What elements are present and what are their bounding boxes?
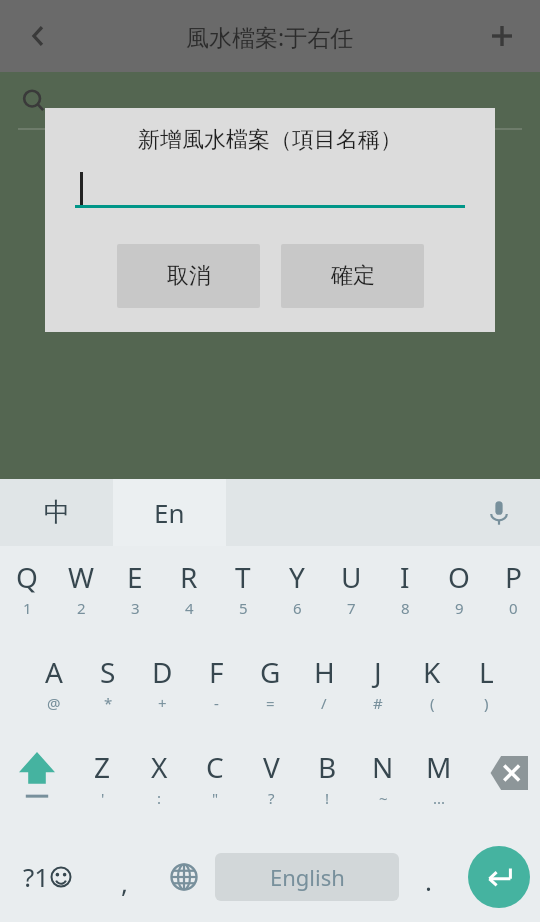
button[interactable]: I	[378, 546, 432, 641]
staticText: 8	[401, 598, 410, 618]
staticText: B	[318, 748, 337, 786]
button[interactable]: H	[297, 641, 351, 736]
staticText: -	[214, 693, 219, 713]
button[interactable]: M	[411, 736, 467, 831]
button[interactable]: F	[189, 641, 243, 736]
button[interactable]: Change language	[153, 831, 215, 922]
staticText: =	[266, 693, 275, 713]
staticText: *	[104, 693, 113, 713]
staticText: 7	[347, 598, 356, 618]
button[interactable]: R	[162, 546, 216, 641]
staticText: (	[430, 693, 435, 713]
staticText: ?	[268, 788, 275, 808]
button[interactable]: ,	[95, 831, 153, 922]
button[interactable]: Backspace	[467, 736, 540, 831]
staticText: A	[45, 653, 63, 691]
staticText: R	[180, 558, 198, 596]
staticText: U	[341, 558, 362, 596]
staticText: "	[212, 788, 219, 808]
staticText: !	[325, 788, 330, 808]
button[interactable]: D	[135, 641, 189, 736]
button[interactable]: Q	[0, 546, 54, 641]
button[interactable]: Z	[74, 736, 131, 831]
staticText: J	[374, 653, 382, 691]
button[interactable]: U	[324, 546, 378, 641]
staticText: G	[260, 653, 281, 691]
button[interactable]: Enter	[468, 846, 530, 908]
button[interactable]: Back	[14, 12, 62, 60]
button[interactable]: J	[351, 641, 405, 736]
staticText: 9	[455, 598, 464, 618]
staticText: 中	[44, 496, 70, 529]
staticText: V	[263, 748, 280, 786]
button[interactable]: V	[243, 736, 299, 831]
staticText: N	[372, 748, 394, 786]
staticText: ~	[379, 788, 388, 808]
staticText: ?1	[23, 859, 50, 894]
button[interactable]: 取消	[117, 244, 260, 308]
staticText: )	[484, 693, 489, 713]
button[interactable]: P	[486, 546, 540, 641]
staticText: 6	[293, 598, 302, 618]
button[interactable]: C	[187, 736, 243, 831]
button[interactable]: W	[54, 546, 108, 641]
button[interactable]: Y	[270, 546, 324, 641]
staticText: K	[423, 653, 441, 691]
staticText: @	[47, 693, 61, 713]
staticText: 確定	[331, 262, 375, 290]
button[interactable]: X	[131, 736, 187, 831]
staticText: M	[426, 748, 452, 786]
staticText: English	[270, 862, 345, 892]
staticText: O	[448, 558, 470, 596]
button[interactable]: S	[81, 641, 135, 736]
staticText: '	[101, 788, 105, 808]
staticText: T	[235, 558, 251, 596]
staticText: 1	[23, 598, 32, 618]
button[interactable]: E	[108, 546, 162, 641]
button[interactable]: Shift	[0, 736, 74, 831]
button[interactable]: Add	[478, 12, 526, 60]
button[interactable]: En	[113, 479, 226, 546]
staticText: P	[505, 558, 522, 596]
button[interactable]: 確定	[281, 244, 424, 308]
button[interactable]: Search	[12, 79, 56, 123]
staticText: ...	[433, 788, 446, 808]
button[interactable]: N	[355, 736, 411, 831]
button[interactable]: Voice input	[226, 479, 540, 546]
staticText: 取消	[167, 262, 211, 290]
staticText: 5	[239, 598, 248, 618]
staticText: 4	[185, 598, 194, 618]
staticText: /	[321, 693, 327, 713]
staticText: C	[206, 748, 224, 786]
staticText: En	[154, 495, 185, 530]
button[interactable]: 中	[0, 479, 113, 546]
staticText: X	[151, 748, 168, 786]
staticText: :	[157, 788, 162, 808]
staticText: +	[158, 693, 167, 713]
button[interactable]: A	[27, 641, 81, 736]
staticText: 新增風水檔案（項目名稱）	[45, 126, 495, 154]
staticText: #	[373, 693, 383, 713]
staticText: ,	[121, 865, 128, 900]
button[interactable]: B	[299, 736, 355, 831]
button[interactable]: T	[216, 546, 270, 641]
button[interactable]: .	[399, 831, 457, 922]
staticText: Q	[16, 558, 38, 596]
staticText: 0	[509, 598, 518, 618]
staticText: 2	[77, 598, 86, 618]
button[interactable]: ?1	[0, 831, 95, 922]
button[interactable]: English	[215, 853, 399, 901]
staticText: .	[425, 863, 432, 898]
staticText: L	[479, 653, 494, 691]
button[interactable]: L	[459, 641, 513, 736]
staticText: D	[152, 653, 173, 691]
staticText: Y	[289, 558, 305, 596]
staticText: I	[400, 558, 410, 596]
button[interactable]: K	[405, 641, 459, 736]
staticText: Z	[94, 748, 111, 786]
staticText: 3	[131, 598, 140, 618]
button[interactable]: G	[243, 641, 297, 736]
button[interactable]: O	[432, 546, 486, 641]
staticText: E	[127, 558, 143, 596]
staticText: 風水檔案:于右任	[186, 21, 354, 52]
